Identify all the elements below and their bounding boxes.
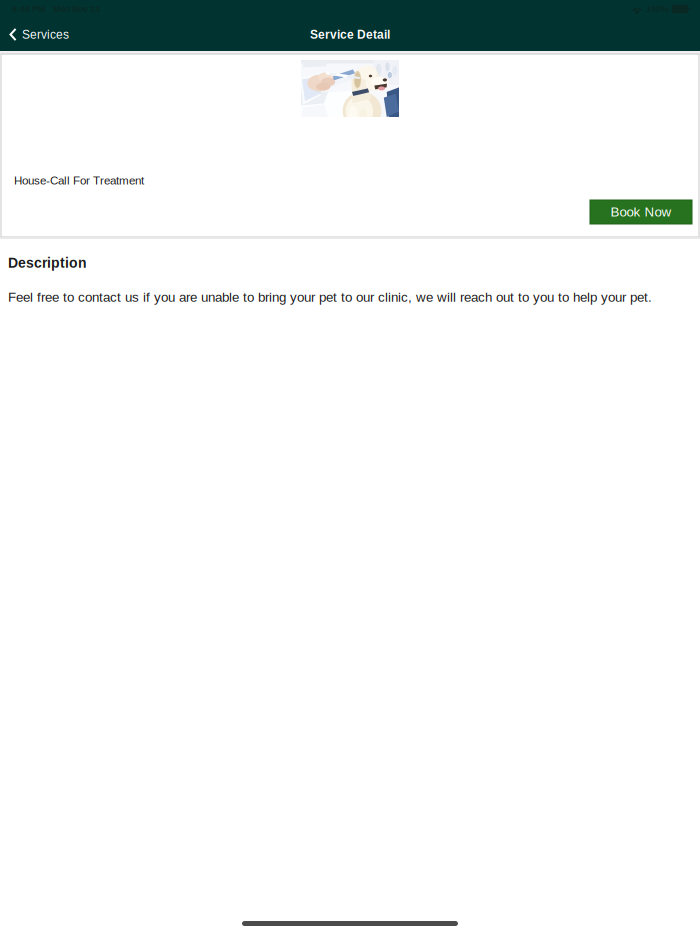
button[interactable]: Services: [0, 18, 79, 51]
staticText: Services: [22, 28, 69, 41]
staticText: Book Now: [610, 205, 671, 219]
staticText: 6:48 PM: [12, 4, 45, 14]
staticText: 100%: [646, 4, 669, 14]
staticText: Description: [8, 255, 87, 271]
staticText: House-Call For Treatment: [14, 174, 144, 187]
button[interactable]: Book Now: [590, 200, 692, 224]
staticText: Mon Nov 23: [53, 4, 100, 14]
staticText: Service Detail: [310, 28, 390, 41]
staticText: Feel free to contact us if you are unabl…: [8, 290, 652, 304]
